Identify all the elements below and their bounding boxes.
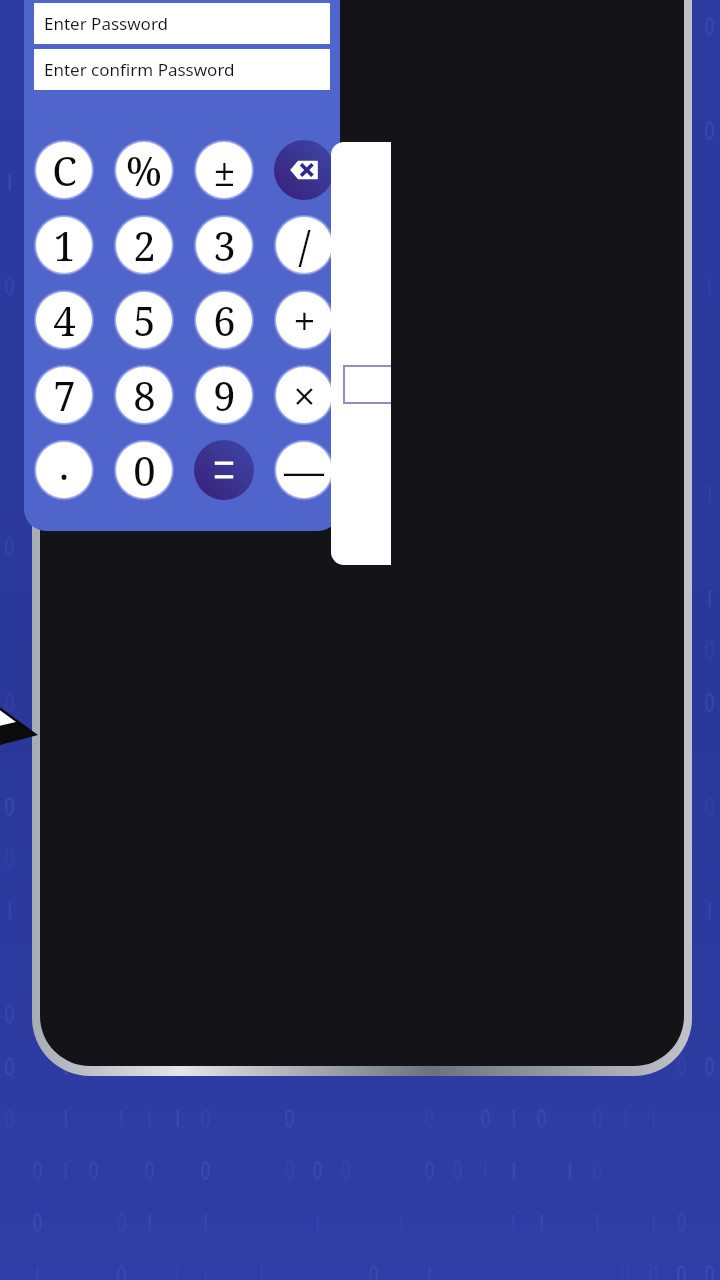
staticText: 2 xyxy=(133,218,156,272)
staticText: 9 xyxy=(213,368,236,422)
button[interactable]: 5 xyxy=(114,290,174,350)
staticText: C xyxy=(52,143,77,197)
staticText: Enter Password xyxy=(44,12,169,35)
staticText: 4 xyxy=(53,293,76,347)
button[interactable]: — xyxy=(274,440,334,500)
staticText: 7 xyxy=(53,368,76,422)
button[interactable]: 6 xyxy=(194,290,254,350)
staticText: % xyxy=(126,143,162,197)
button[interactable]: Enter Password xyxy=(34,3,330,44)
staticText: 3 xyxy=(213,218,236,272)
staticText: 0 xyxy=(133,443,156,497)
staticText: . xyxy=(59,437,69,491)
staticText: + xyxy=(293,293,316,347)
button[interactable]: 1 xyxy=(34,215,94,275)
staticText: 1 xyxy=(53,218,76,272)
staticText: 6 xyxy=(213,293,236,347)
button[interactable]: 3 xyxy=(194,215,254,275)
button[interactable]: 2 xyxy=(114,215,174,275)
button[interactable]: ± xyxy=(194,140,254,200)
staticText: / xyxy=(298,217,311,274)
button[interactable]: % xyxy=(114,140,174,200)
button[interactable]: 4 xyxy=(34,290,94,350)
staticText: — xyxy=(284,443,324,497)
button[interactable]: 8 xyxy=(114,365,174,425)
button[interactable] xyxy=(331,142,391,565)
button[interactable]: . xyxy=(34,440,94,500)
button[interactable]: Equals xyxy=(194,440,254,500)
button[interactable]: 7 xyxy=(34,365,94,425)
button[interactable]: 9 xyxy=(194,365,254,425)
button[interactable]: × xyxy=(274,365,334,425)
button[interactable]: 0 xyxy=(114,440,174,500)
staticText: 8 xyxy=(133,368,156,422)
button[interactable]: C xyxy=(34,140,94,200)
staticText: × xyxy=(293,368,316,422)
button[interactable]: + xyxy=(274,290,334,350)
staticText: Enter confirm Password xyxy=(44,58,235,81)
button[interactable]: / xyxy=(274,215,334,275)
button[interactable]: Enter confirm Password xyxy=(34,49,330,90)
button[interactable]: Backspace xyxy=(274,140,334,200)
staticText: ± xyxy=(213,143,236,197)
staticText: 5 xyxy=(133,293,156,347)
